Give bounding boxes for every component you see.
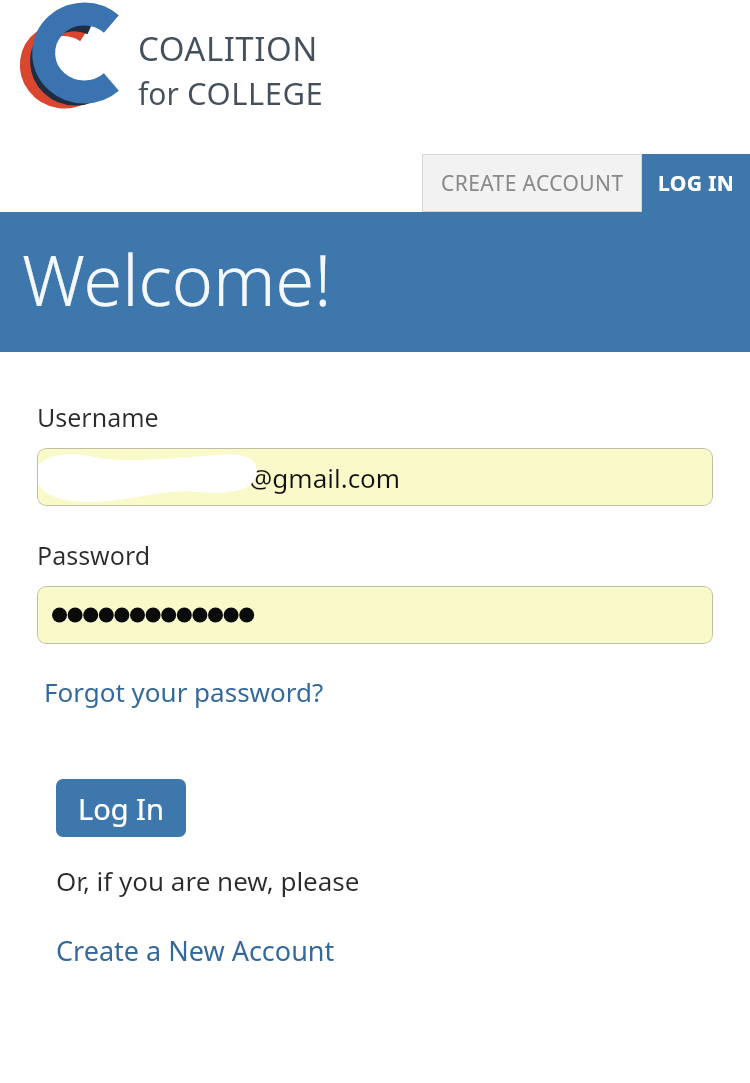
staticText: Welcome! — [22, 231, 332, 326]
staticText: Log In — [78, 789, 164, 828]
button[interactable]: LOG IN — [642, 154, 750, 212]
staticText: @gmail.com — [249, 460, 401, 495]
staticText: LOG IN — [658, 169, 735, 198]
staticText: Or, if you are new, please — [56, 863, 360, 898]
staticText: Forgot your password? — [44, 674, 324, 709]
button[interactable]: Create a New Account — [56, 932, 335, 969]
other: Coalition for College logo — [26, 12, 130, 112]
staticText: Create a New Account — [56, 932, 335, 969]
staticText: Password — [37, 538, 151, 572]
staticText: COALITION — [138, 26, 318, 71]
button[interactable] — [37, 586, 713, 644]
staticText: CREATE ACCOUNT — [441, 169, 624, 198]
staticText: Username — [37, 400, 159, 434]
staticText: for — [138, 73, 187, 114]
staticText: COLLEGE — [187, 72, 324, 114]
button[interactable]: @gmail.com — [37, 448, 713, 506]
button[interactable]: Log In — [56, 779, 186, 837]
button[interactable]: CREATE ACCOUNT — [422, 154, 642, 212]
button[interactable]: Forgot your password? — [44, 674, 324, 709]
